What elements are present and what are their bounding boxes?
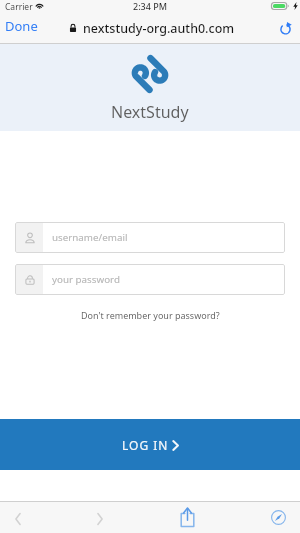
staticText: NextStudy [111,101,189,123]
staticText: Carrier [5,1,33,13]
button[interactable]: nextstudy-org.auth0.com [69,13,235,43]
button[interactable]: Back [6,503,30,533]
staticText: LOG IN [122,437,169,453]
staticText: your password [52,273,120,286]
button[interactable]: Done [2,11,40,41]
button[interactable]: Don't remember your password? [81,309,220,321]
button[interactable]: Share [175,501,199,533]
staticText: 2:34 PM [133,0,167,12]
button[interactable]: username/email [15,222,285,253]
button[interactable]: LOG IN [0,419,300,470]
staticText: Done [5,17,38,35]
button[interactable]: Reload [274,13,298,43]
staticText: nextstudy-org.auth0.com [83,20,235,37]
button[interactable]: your password [15,264,285,295]
button[interactable]: Safari [266,501,290,533]
staticText: username/email [52,231,128,244]
button[interactable]: Forward [88,503,112,533]
